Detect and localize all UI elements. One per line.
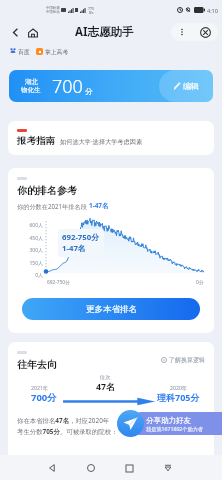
staticText: 1-47名 [89, 201, 109, 210]
staticText: 往年去向 [17, 358, 57, 371]
staticText: 你在本省排名47名，对应2020年 考生分数705分。可被录取的院校： [17, 416, 118, 436]
button[interactable]: Back [8, 25, 23, 40]
staticText: 1-47名 [62, 243, 86, 254]
button[interactable]: Close [193, 23, 218, 41]
staticText: 掌上高考 [45, 48, 69, 55]
staticText: 你的排名参考 [17, 184, 77, 197]
staticText: 775 [88, 6, 95, 11]
button[interactable]: Home [82, 459, 100, 477]
staticText: 位次 [100, 374, 111, 381]
staticText: 2020年 [170, 384, 188, 391]
button[interactable]: 更多本省排名 [22, 298, 200, 320]
staticText: 百度 [18, 48, 30, 55]
staticText: 我是第1671802个助力者 [146, 425, 204, 432]
button[interactable]: Hide keyboard [159, 459, 177, 477]
staticText: 47名 [96, 381, 115, 393]
staticText: 450人 [17, 235, 43, 242]
staticText: 分 [85, 87, 93, 96]
staticText: 你的分数在2021年排名段 [17, 202, 89, 210]
button[interactable]: 报考指南 [8, 121, 214, 155]
staticText: 如何选大学·选择大学考虑因素 [60, 137, 143, 145]
staticText: 700 [52, 74, 83, 99]
staticText: 692-750分 [62, 232, 100, 243]
staticText: 更多本省排名 [86, 304, 137, 315]
button[interactable]: More options [171, 23, 193, 41]
staticText: 中国移动 [46, 10, 60, 14]
staticText: 2021年 [31, 384, 49, 391]
staticText: 了解换算逻辑 [169, 356, 205, 364]
button[interactable]: Back [43, 459, 61, 477]
staticText: 600人 [17, 222, 43, 229]
button[interactable]: 编辑 [159, 70, 213, 102]
button[interactable]: 编辑 [9, 70, 213, 102]
staticText: 编辑 [183, 81, 199, 91]
button[interactable]: 分享助力好友 [117, 410, 209, 437]
staticText: 湖北 [25, 78, 38, 86]
staticText: 报考指南 [17, 135, 55, 147]
staticText: 0分 [196, 279, 204, 286]
staticText: B/s [89, 11, 94, 15]
staticText: 理科705分 [157, 391, 200, 403]
button[interactable]: Recent apps [120, 459, 138, 477]
staticText: 物化生 [21, 86, 41, 94]
button[interactable]: 了解换算逻辑 [161, 351, 205, 364]
staticText: 分享助力好友 [146, 416, 191, 425]
button[interactable]: Home [25, 25, 40, 40]
staticText: 700分 [31, 391, 57, 404]
staticText: 300人 [17, 247, 43, 254]
staticText: 150人 [17, 260, 43, 267]
staticText: 4:10 [207, 7, 218, 14]
staticText: AI志愿助手 [75, 24, 134, 40]
staticText: 692-750分 [47, 279, 70, 286]
staticText: 0人 [17, 272, 43, 279]
staticText: 中国联通 [46, 6, 60, 10]
